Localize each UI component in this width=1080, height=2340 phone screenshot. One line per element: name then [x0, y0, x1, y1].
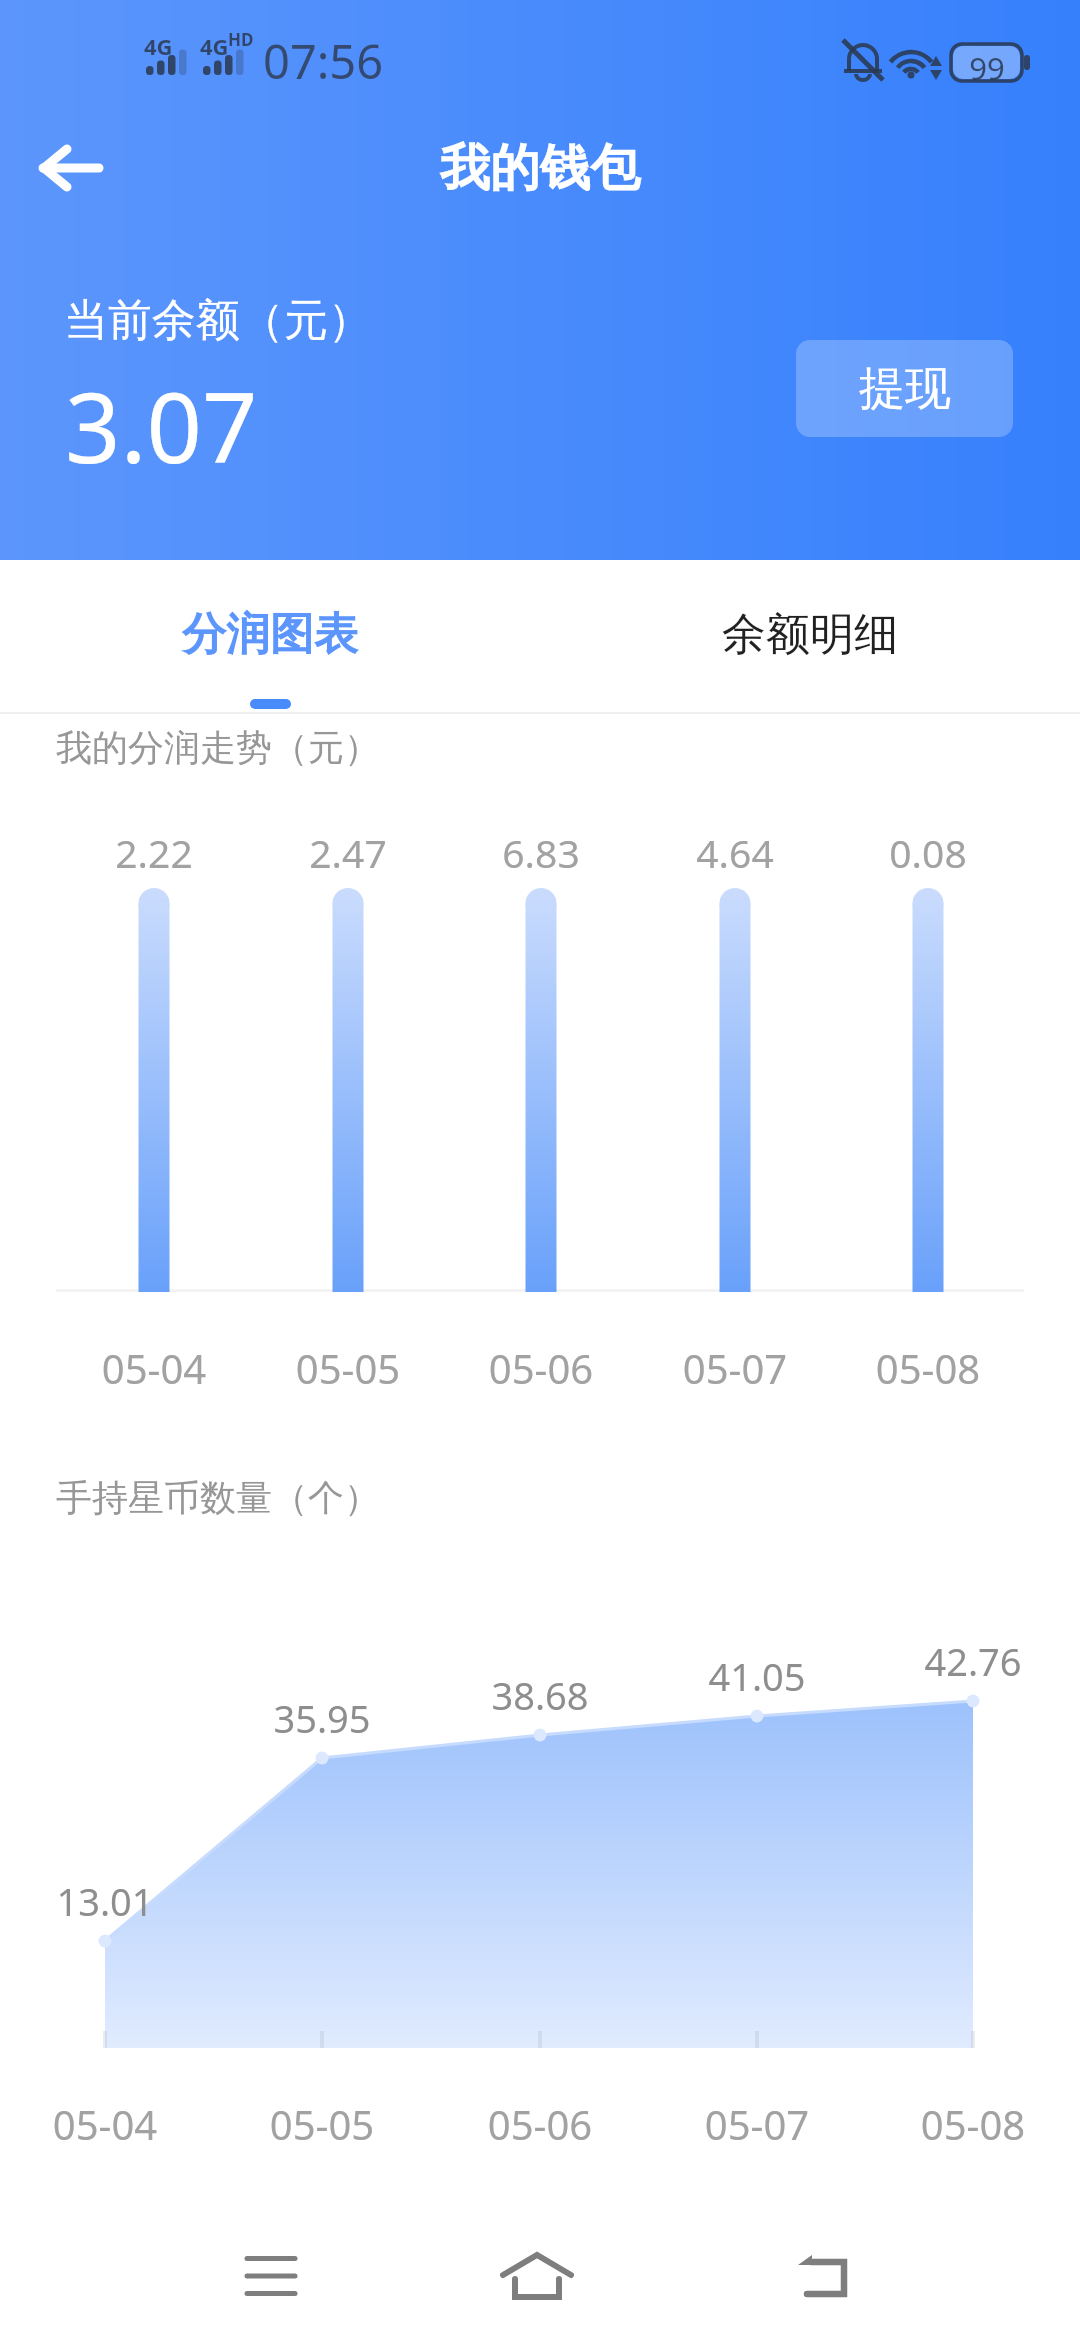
staticText: 2.47 — [248, 826, 448, 879]
staticText: 05-05 — [222, 2097, 422, 2151]
staticText: HD — [228, 28, 254, 51]
button[interactable]: Recent apps — [181, 2201, 361, 2340]
staticText: 当前余额（元） — [64, 293, 372, 348]
staticText: 4G — [144, 31, 173, 61]
staticText: 38.68 — [440, 1669, 640, 1721]
staticText: 6.83 — [441, 826, 641, 879]
staticText: 05-04 — [5, 2097, 205, 2151]
staticText: 05-06 — [440, 2097, 640, 2151]
staticText: 4.64 — [635, 826, 835, 879]
button[interactable]: 余额明细 — [540, 560, 1080, 712]
staticText: 99 — [965, 47, 1009, 89]
staticText: 05-06 — [441, 1341, 641, 1395]
button[interactable]: Back — [24, 122, 116, 214]
staticText: 05-08 — [873, 2097, 1073, 2151]
button[interactable]: Home — [447, 2201, 627, 2340]
staticText: 41.05 — [657, 1650, 857, 1702]
staticText: 05-07 — [657, 2097, 857, 2151]
staticText: 05-08 — [828, 1341, 1028, 1395]
staticText: 我的分润走势（元） — [56, 725, 380, 770]
staticText: 手持星币数量（个） — [56, 1475, 380, 1520]
staticText: 余额明细 — [722, 607, 898, 662]
staticText: 13.01 — [5, 1875, 205, 1927]
staticText: 3.07 — [65, 359, 258, 491]
staticText: 42.76 — [873, 1635, 1073, 1687]
staticText: 2.22 — [54, 826, 254, 879]
staticText: 05-05 — [248, 1341, 448, 1395]
staticText: 分润图表 — [182, 607, 358, 662]
button[interactable]: Back — [729, 2201, 909, 2340]
staticText: 07:56 — [263, 29, 384, 93]
staticText: 我的钱包 — [0, 137, 1080, 200]
staticText: 05-04 — [54, 1341, 254, 1395]
staticText: 35.95 — [222, 1692, 422, 1744]
staticText: 05-07 — [635, 1341, 835, 1395]
staticText: 提现 — [859, 360, 951, 418]
button[interactable]: 提现 — [796, 340, 1013, 437]
staticText: 4G — [200, 31, 229, 61]
button[interactable]: 分润图表 — [0, 560, 540, 712]
staticText: 0.08 — [828, 826, 1028, 879]
